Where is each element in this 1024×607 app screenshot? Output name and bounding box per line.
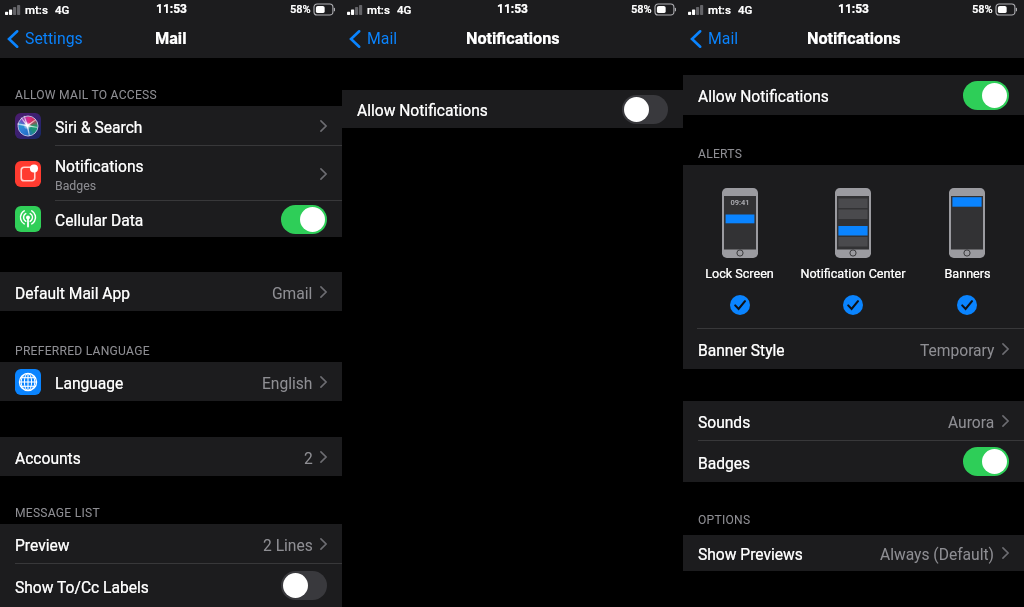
staticText: ALLOW MAIL TO ACCESS [15,88,157,102]
button[interactable]: Banner Style [683,329,1024,369]
staticText: 11:53 [497,2,528,16]
staticText: Temporary [920,342,995,360]
staticText: 09:41 [730,198,750,207]
staticText: ALERTS [698,147,743,161]
staticText: 58% [290,3,311,16]
button[interactable]: Default Mail App [0,272,342,311]
button[interactable]: Accounts [0,437,342,476]
button[interactable]: Toggle on [963,81,1009,110]
staticText: English [262,375,313,393]
button[interactable]: Sounds [683,401,1024,441]
staticText: Badges [55,179,97,193]
button[interactable]: Allow Notifications [683,75,1024,115]
staticText: Mail [155,29,187,48]
staticText: 2 Lines [263,537,313,555]
button[interactable]: Back to Mail [683,25,749,52]
staticText: Notifications [807,29,901,48]
staticText: Notifications [466,29,560,48]
staticText: Notification Center [800,266,906,281]
staticText: Always (Default) [880,546,995,564]
staticText: 4G [738,3,753,16]
staticText: 11:53 [838,2,869,16]
staticText: 11:53 [156,2,187,16]
button[interactable]: Lock Screen alerts, selected [683,188,796,315]
button[interactable]: Badges [683,441,1024,482]
staticText: 58% [631,3,652,16]
staticText: Default Mail App [15,285,130,303]
button[interactable]: Show Previews [683,535,1024,571]
staticText: 4G [397,3,412,16]
staticText: Language [55,375,124,393]
staticText: PREFERRED LANGUAGE [15,344,150,358]
staticText: Mail [708,29,739,48]
staticText: Cellular Data [55,212,144,230]
staticText: mt:s [25,3,48,16]
button[interactable]: Toggle on [963,447,1009,476]
staticText: Show To/Cc Labels [15,579,149,597]
button[interactable]: Preview [0,524,342,564]
button[interactable]: Show To/Cc Labels [0,564,342,607]
staticText: Sounds [698,414,751,432]
staticText: Notifications [55,158,144,176]
staticText: OPTIONS [698,513,751,527]
staticText: Allow Notifications [698,88,829,106]
staticText: 4G [55,3,70,16]
button[interactable]: Language [0,362,342,401]
button[interactable]: Toggle on [281,205,327,234]
staticText: Badges [698,455,751,473]
staticText: 58% [972,3,993,16]
staticText: 2 [304,450,313,468]
button[interactable]: Notification Center alerts, selected [796,188,910,315]
button[interactable]: Banners alerts, selected [910,188,1024,315]
staticText: Aurora [948,414,995,432]
button[interactable]: Toggle off [622,95,668,124]
button[interactable]: Toggle off [281,571,327,600]
staticText: mt:s [708,3,731,16]
staticText: MESSAGE LIST [15,506,100,520]
button[interactable]: Siri & Search [0,106,342,146]
button[interactable]: Allow Notifications [342,90,683,128]
button[interactable]: Back to Mail [342,25,408,52]
staticText: Mail [367,29,398,48]
staticText: mt:s [367,3,390,16]
staticText: Accounts [15,450,81,468]
staticText: Lock Screen [705,266,774,281]
staticText: Banner Style [698,342,920,360]
staticText: Settings [25,29,83,48]
button[interactable]: Cellular Data [0,201,342,237]
staticText: Show Previews [698,546,803,564]
staticText: Siri & Search [55,119,143,137]
staticText: Allow Notifications [357,102,488,120]
staticText: Preview [15,537,70,555]
button[interactable]: Back to Settings [0,25,93,52]
staticText: Gmail [272,285,313,303]
button[interactable]: Notifications [0,146,342,201]
staticText: Banners [944,266,991,281]
